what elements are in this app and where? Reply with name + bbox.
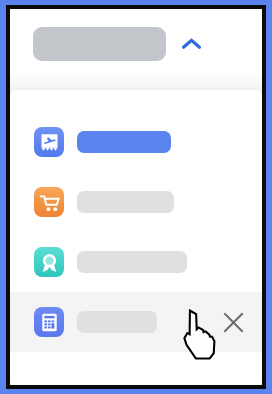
button[interactable] [10,232,262,292]
button[interactable] [10,172,262,232]
button[interactable]: Remove [10,292,262,352]
button[interactable] [10,112,262,172]
button[interactable]: Remove [218,307,248,337]
button[interactable]: Collapse [174,27,208,61]
